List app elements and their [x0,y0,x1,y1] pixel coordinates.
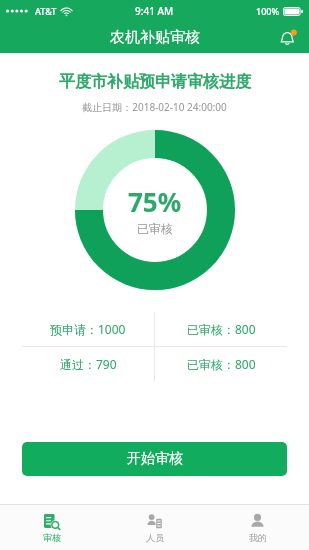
button[interactable]: 我的 [206,505,309,550]
button[interactable]: Notifications [275,25,301,51]
staticText: 人员 [146,532,164,543]
staticText: 截止日期：2018-02-10 24:00:00 [82,100,227,114]
staticText: 已审核：800 [187,321,256,337]
staticText: AT&T [35,5,57,17]
staticText: 平度市补贴预申请审核进度 [59,72,251,92]
staticText: 9:41 AM [135,4,174,18]
staticText: 我的 [249,532,267,543]
staticText: 已审核：800 [187,356,256,372]
staticText: 100% [256,5,280,17]
button[interactable]: 审核 [0,505,103,550]
staticText: 预申请：1000 [50,321,126,337]
staticText: 通过：790 [60,356,117,372]
staticText: 审核 [43,532,61,543]
button[interactable]: 人员 [103,505,206,550]
staticText: 已审核 [137,221,173,236]
staticText: 开始审核 [127,450,183,468]
staticText: 农机补贴审核 [110,28,200,47]
staticText: 75% [128,184,182,219]
button[interactable]: 开始审核 [22,442,287,476]
